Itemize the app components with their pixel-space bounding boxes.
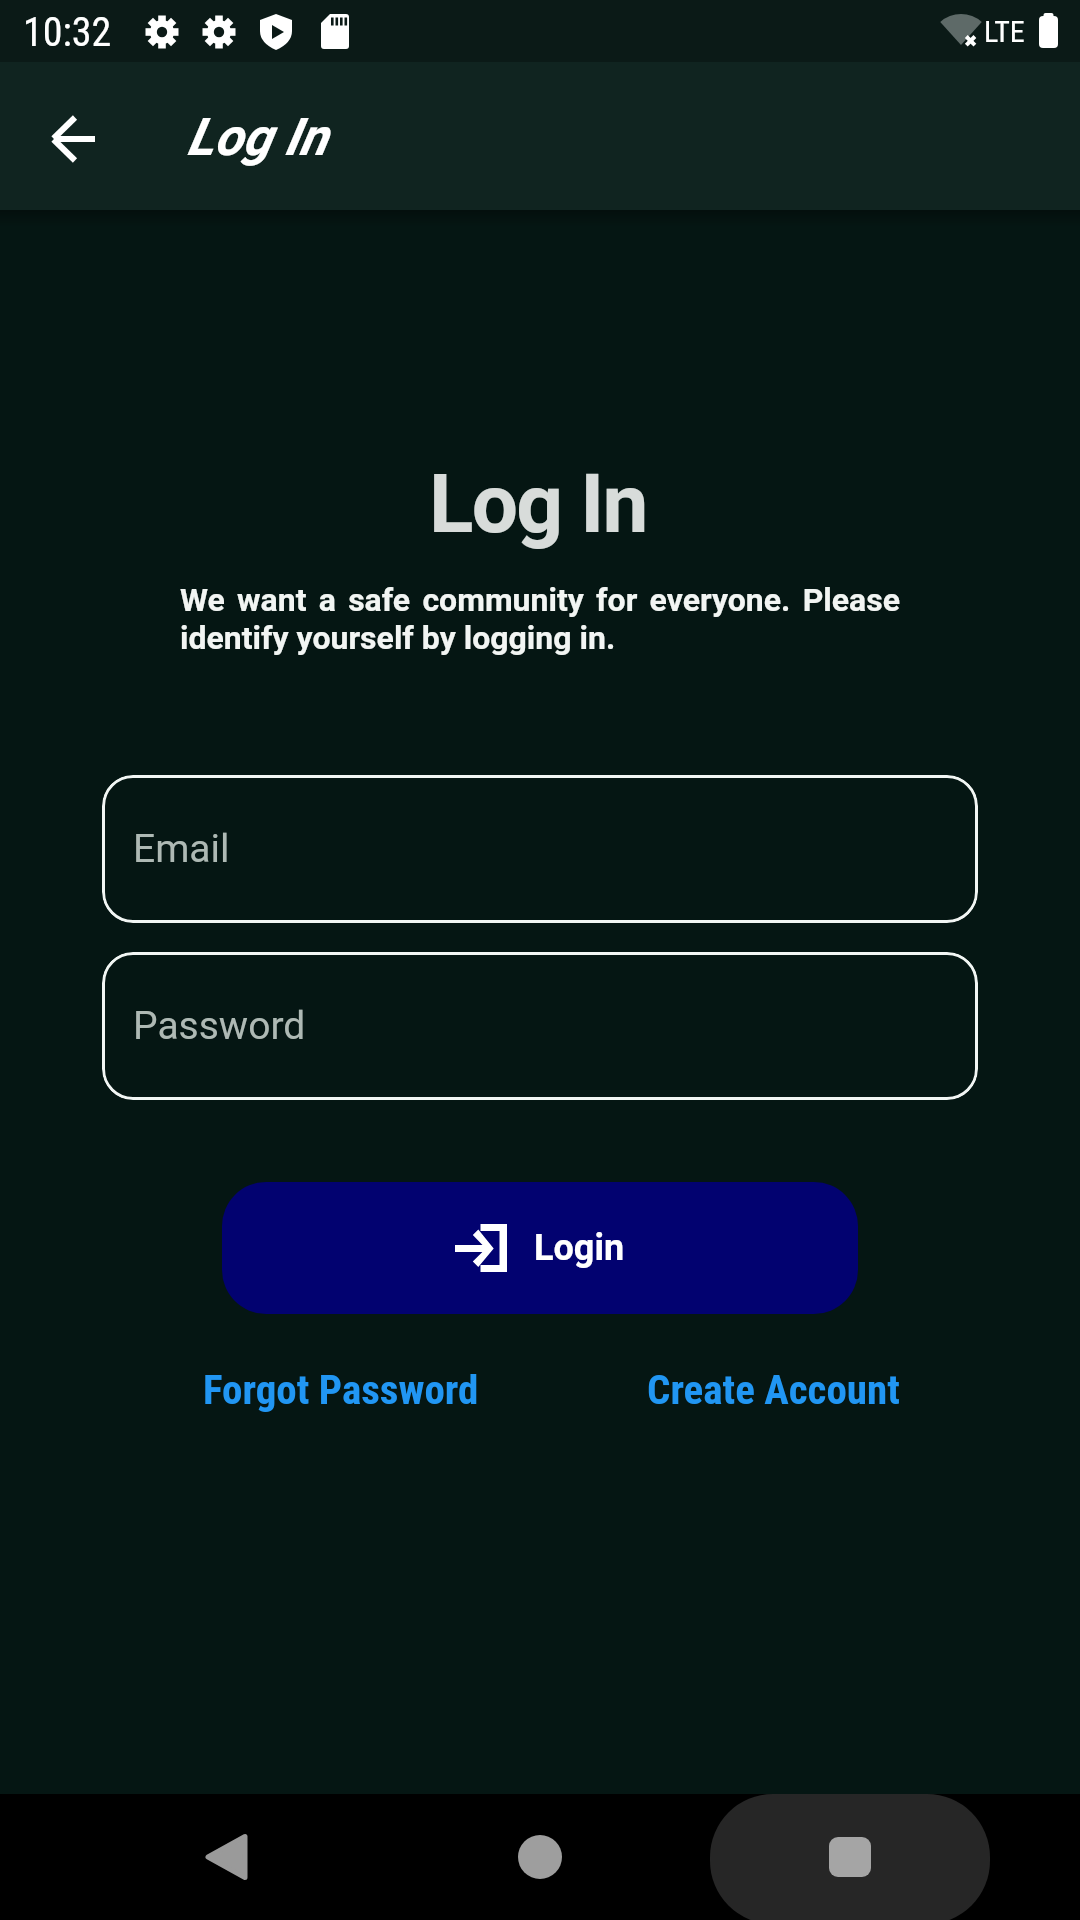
staticText: Email [133, 826, 230, 872]
staticText: Create Account [647, 1366, 900, 1414]
staticText: Password [133, 1003, 306, 1049]
button[interactable] [505, 1822, 575, 1892]
button[interactable] [815, 1822, 885, 1892]
button[interactable]: Forgot Password [203, 1366, 479, 1414]
button[interactable] [38, 102, 108, 172]
button[interactable]: Login [222, 1182, 858, 1314]
staticText: Log In [187, 107, 328, 168]
button[interactable] [190, 1822, 264, 1892]
button[interactable]: Password [102, 952, 978, 1100]
staticText: Log In [429, 456, 647, 552]
button[interactable]: Email [102, 775, 978, 923]
button[interactable]: Create Account [647, 1366, 900, 1414]
staticText: LTE [984, 14, 1025, 49]
staticText: We want a safe community for everyone. P… [180, 581, 900, 657]
staticText: Login [534, 1227, 625, 1269]
staticText: Forgot Password [203, 1366, 479, 1414]
staticText: 10:32 [23, 9, 112, 56]
